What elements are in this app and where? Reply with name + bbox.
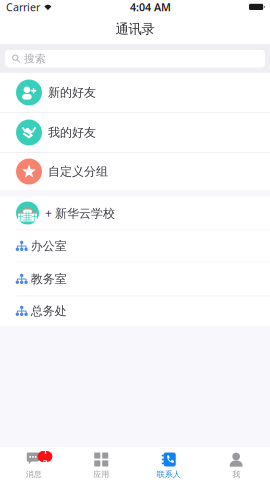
staticText: Carrier: [6, 0, 40, 14]
staticText: 办公室: [31, 239, 67, 253]
staticText: 联系人: [157, 469, 181, 479]
staticText: 搜索: [24, 52, 46, 65]
staticText: 总务处: [31, 304, 67, 318]
button[interactable]: 通讯录: [0, 14, 270, 44]
button[interactable]: 总务处: [0, 296, 270, 325]
button[interactable]: 自定义分组: [0, 153, 270, 190]
staticText: 自定义分组: [48, 164, 108, 179]
button[interactable]: 联系人: [135, 446, 202, 480]
button[interactable]: 应用: [67, 446, 135, 480]
staticText: + 新华云学校: [45, 205, 115, 221]
button[interactable]: 教务室: [0, 262, 270, 295]
staticText: 我: [232, 469, 240, 479]
button[interactable]: 我的好友: [0, 113, 270, 152]
staticText: 新的好友: [48, 85, 96, 100]
staticText: 13: [42, 444, 47, 469]
button[interactable]: 13: [0, 446, 67, 480]
button[interactable]: 办公室: [0, 230, 270, 261]
button[interactable]: 搜索: [0, 44, 270, 73]
staticText: 4:04 AM: [130, 0, 171, 14]
staticText: 教务室: [31, 272, 67, 286]
staticText: 消息: [26, 469, 42, 479]
button[interactable]: 新的好友: [0, 73, 270, 112]
staticText: 通讯录: [115, 21, 154, 37]
staticText: 我的好友: [48, 125, 96, 140]
staticText: 应用: [93, 469, 109, 479]
button[interactable]: + 新华云学校: [0, 196, 270, 229]
button[interactable]: 我: [202, 446, 270, 480]
